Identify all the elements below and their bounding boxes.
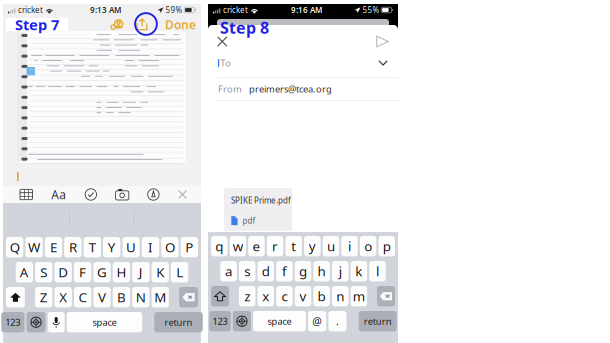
button[interactable]: k — [351, 261, 367, 281]
staticText: Step 8 — [220, 17, 269, 38]
button[interactable]: Close — [178, 190, 187, 199]
button[interactable]: Delete — [179, 287, 198, 307]
button[interactable]: r — [267, 236, 283, 256]
button[interactable]: n — [332, 286, 348, 306]
button[interactable]: m — [351, 286, 367, 306]
button[interactable]: K — [152, 262, 169, 282]
button[interactable]: o — [360, 236, 376, 256]
button[interactable]: w — [230, 236, 246, 256]
button[interactable]: V — [93, 287, 111, 307]
button[interactable]: l — [369, 261, 386, 281]
button[interactable]: q — [211, 236, 227, 256]
button[interactable]: L — [171, 262, 188, 282]
button[interactable]: . — [328, 311, 346, 331]
button[interactable]: T — [84, 237, 101, 257]
button[interactable]: Table — [20, 189, 32, 200]
staticText: Z — [40, 288, 48, 306]
staticText: v — [299, 287, 306, 305]
button[interactable]: d — [257, 261, 274, 281]
button[interactable]: b — [313, 286, 330, 306]
button[interactable]: To — [208, 51, 398, 75]
staticText: 9:13 AM — [90, 5, 121, 15]
button[interactable]: SPIKE Prime.pdf — [224, 188, 292, 231]
button[interactable]: A — [16, 262, 33, 282]
button[interactable]: h — [313, 261, 330, 281]
button[interactable]: P — [181, 237, 198, 257]
button[interactable]: C — [74, 287, 91, 307]
button[interactable]: z — [239, 286, 255, 306]
button[interactable]: J — [132, 262, 149, 282]
button[interactable]: Markup — [148, 189, 159, 200]
staticText: z — [244, 287, 250, 305]
button[interactable]: F — [74, 262, 91, 282]
button[interactable]: a — [220, 261, 237, 281]
staticText: return — [364, 315, 392, 327]
button[interactable]: Camera — [115, 189, 129, 200]
button[interactable]: s — [239, 261, 255, 281]
button[interactable]: D — [54, 262, 72, 282]
button[interactable]: Collaborate — [110, 18, 124, 30]
button[interactable]: Share — [136, 18, 148, 31]
button[interactable]: Send — [367, 30, 398, 53]
button[interactable]: j — [332, 261, 348, 281]
staticText: C — [79, 288, 87, 306]
button[interactable]: Checklist — [85, 189, 97, 200]
button[interactable]: y — [304, 236, 321, 256]
button[interactable]: U — [122, 237, 140, 257]
button[interactable]: @ — [308, 311, 326, 331]
staticText: H — [116, 263, 126, 281]
button[interactable]: S — [35, 262, 52, 282]
button[interactable]: M — [152, 287, 169, 307]
button[interactable]: x — [257, 286, 274, 306]
button[interactable]: Next keyboard — [27, 312, 46, 332]
button[interactable]: Done — [165, 16, 196, 32]
staticText: X — [59, 288, 67, 306]
button[interactable]: N — [132, 287, 149, 307]
button[interactable]: H — [113, 262, 130, 282]
button[interactable]: space — [67, 312, 142, 332]
button[interactable]: Delete — [377, 286, 395, 306]
button[interactable]: W — [25, 237, 43, 257]
button[interactable]: return — [154, 312, 203, 332]
button[interactable]: Shift — [6, 287, 25, 307]
button[interactable]: Close — [208, 30, 236, 53]
button[interactable]: g — [295, 261, 311, 281]
staticText: s — [244, 262, 250, 280]
staticText: l — [376, 262, 379, 280]
button[interactable]: u — [323, 236, 339, 256]
button[interactable]: t — [285, 236, 302, 256]
button[interactable]: Y — [103, 237, 120, 257]
button[interactable]: v — [295, 286, 311, 306]
button[interactable]: f — [276, 261, 293, 281]
button[interactable]: p — [378, 236, 395, 256]
button[interactable]: Aa — [51, 186, 66, 202]
button[interactable]: Next keyboard — [233, 311, 251, 331]
button[interactable]: i — [341, 236, 358, 256]
button[interactable]: E — [45, 237, 62, 257]
staticText: To — [220, 57, 231, 69]
button[interactable]: X — [54, 287, 72, 307]
button[interactable]: Q — [6, 237, 23, 257]
button[interactable]: 123 — [209, 311, 231, 331]
button[interactable]: I — [142, 237, 159, 257]
button[interactable]: Z — [35, 287, 52, 307]
button[interactable]: R — [64, 237, 81, 257]
button[interactable]: O — [161, 237, 179, 257]
staticText: n — [336, 287, 344, 305]
button[interactable]: 123 — [1, 312, 24, 332]
staticText: u — [327, 237, 335, 255]
staticText: 59% — [166, 5, 183, 15]
button[interactable]: B — [113, 287, 130, 307]
button[interactable]: return — [359, 311, 397, 331]
button[interactable]: c — [276, 286, 293, 306]
staticText: p — [383, 237, 391, 255]
staticText: Y — [108, 238, 116, 256]
button[interactable]: Dictate — [48, 312, 65, 332]
staticText: 55% — [363, 5, 380, 15]
button[interactable]: space — [253, 311, 306, 331]
staticText: E — [50, 238, 57, 256]
staticText: R — [69, 238, 77, 256]
button[interactable]: Shift — [211, 286, 229, 306]
button[interactable]: G — [93, 262, 111, 282]
button[interactable]: e — [248, 236, 265, 256]
